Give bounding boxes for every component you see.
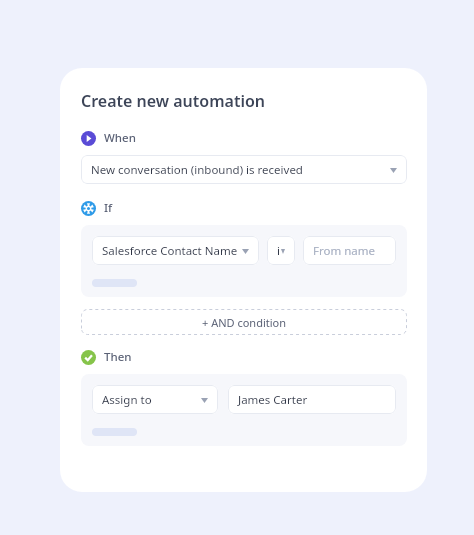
button[interactable]: Salesforce Contact Name: [92, 236, 259, 265]
button[interactable]: From name: [303, 236, 396, 265]
staticText: James Carter: [238, 392, 308, 408]
staticText: New conversation (inbound) is received: [91, 162, 303, 178]
other: If condition: [81, 201, 96, 216]
staticText: Then: [104, 349, 132, 365]
button[interactable]: + AND condition: [81, 309, 407, 335]
staticText: From name: [313, 243, 375, 259]
button[interactable]: James Carter: [228, 385, 396, 414]
staticText: If: [104, 200, 113, 216]
button[interactable]: Assign to: [92, 385, 218, 414]
staticText: Salesforce Contact Name: [102, 243, 238, 259]
button[interactable]: Then action: [81, 349, 138, 365]
button[interactable]: New conversation (inbound) is received: [81, 155, 407, 184]
other: Then action: [81, 350, 96, 365]
button[interactable]: is: [267, 236, 295, 265]
staticText: Create new automation: [81, 90, 266, 112]
button[interactable]: If condition: [81, 200, 119, 216]
staticText: When: [104, 130, 136, 146]
other: When trigger: [81, 131, 96, 146]
staticText: + AND condition: [202, 315, 287, 330]
button[interactable]: When trigger: [81, 130, 142, 146]
staticText: Assign to: [102, 392, 152, 408]
